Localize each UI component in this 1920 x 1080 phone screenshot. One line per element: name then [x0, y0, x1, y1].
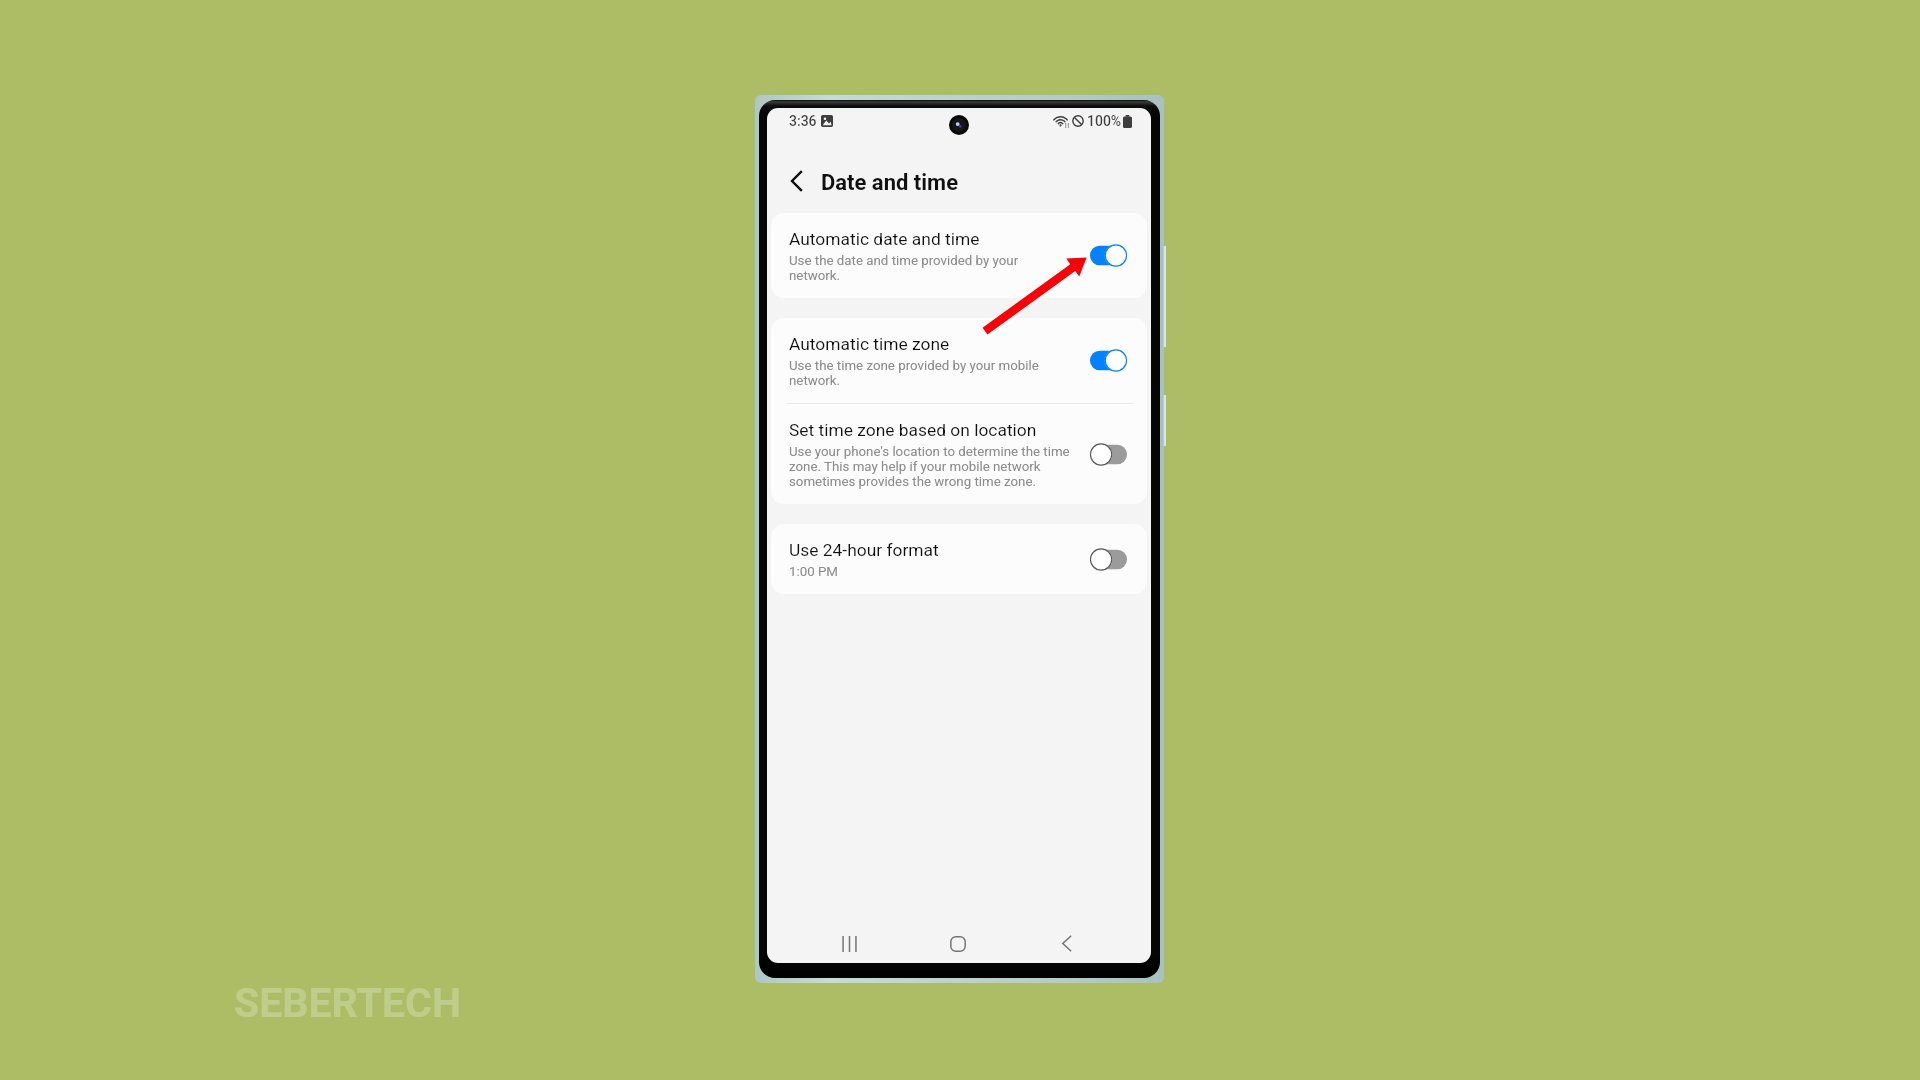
staticText: Automatic date and time — [789, 228, 980, 249]
staticText: Automatic time zone — [789, 333, 950, 354]
button[interactable]: Use 24-hour format — [771, 524, 1147, 594]
staticText: 3:36 — [789, 113, 817, 129]
button[interactable]: Navigate up — [781, 166, 811, 196]
button[interactable]: Off — [1090, 548, 1127, 571]
button[interactable]: Automatic time zone — [771, 318, 1147, 403]
staticText: SEBERTECH — [234, 979, 461, 1027]
button[interactable]: Recent apps — [795, 924, 903, 963]
staticText: Date and time — [821, 170, 959, 196]
button[interactable]: On — [1090, 349, 1127, 372]
staticText: 1:00 PM — [789, 564, 838, 579]
button[interactable]: On — [1090, 244, 1127, 267]
button[interactable]: Back — [1012, 924, 1121, 963]
staticText: 100% — [1087, 113, 1122, 129]
button[interactable]: Set time zone based on location — [771, 404, 1147, 504]
staticText: Use the time zone provided by your mobil… — [789, 358, 1039, 388]
staticText: Use your phone's location to determine t… — [789, 444, 1070, 489]
staticText: Use the date and time provided by your n… — [789, 253, 1019, 283]
button[interactable]: Off — [1090, 443, 1127, 466]
staticText: Use 24-hour format — [789, 539, 939, 560]
staticText: Set time zone based on location — [789, 419, 1037, 440]
button[interactable]: Automatic date and time — [771, 213, 1147, 298]
button[interactable]: Home — [903, 924, 1012, 963]
